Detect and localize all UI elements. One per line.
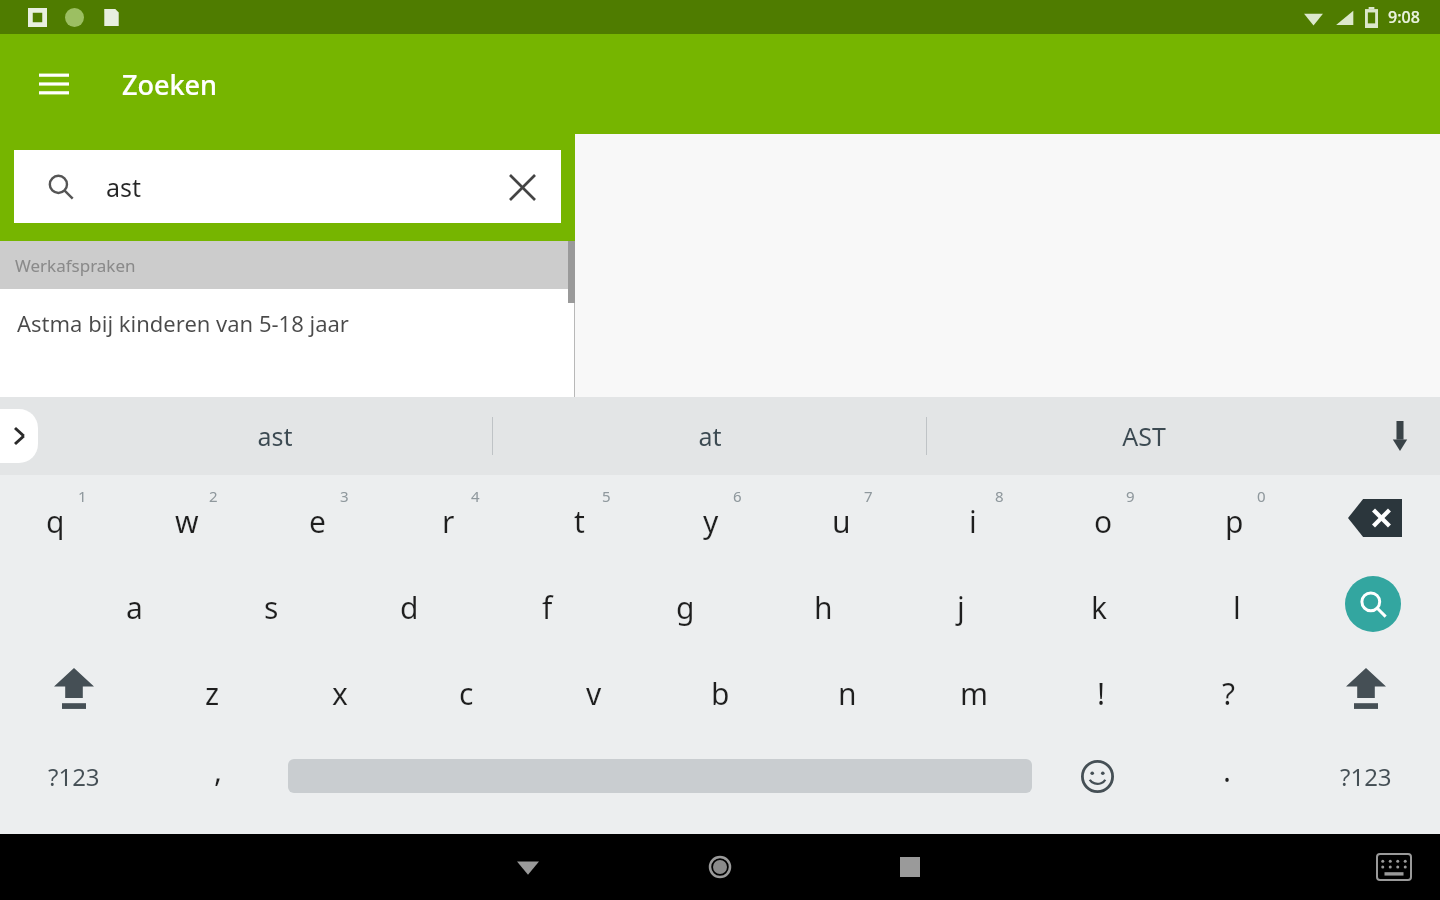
staticText: 6 [733,486,742,506]
staticText: 0 [1257,486,1266,506]
button[interactable]: a [66,561,203,647]
staticText: w [175,501,199,542]
button[interactable]: Voice input [1360,397,1440,475]
button[interactable]: p [1179,475,1310,561]
staticText: 1 [78,486,87,506]
button[interactable]: Home [690,837,750,897]
button[interactable]: Hide keyboard [498,837,558,897]
button[interactable]: h [754,561,892,647]
button[interactable]: ?123 [1292,733,1440,819]
staticText: r [442,501,455,542]
button[interactable]: o [1048,475,1179,561]
staticText: s [264,587,279,628]
staticText: f [542,587,553,628]
staticText: v [586,673,602,714]
button[interactable]: u [786,475,917,561]
button[interactable]: c [403,647,530,733]
staticText: Astma bij kinderen van 5-18 jaar [17,308,349,338]
button[interactable]: ? [1165,647,1292,733]
button[interactable]: v [530,647,657,733]
button[interactable]: i [917,475,1048,561]
staticText: y [703,501,719,542]
button[interactable]: ?123 [0,733,148,819]
button[interactable]: f [478,561,616,647]
staticText: a [126,587,143,628]
staticText: b [711,673,730,714]
staticText: . [1223,750,1232,791]
button[interactable]: More suggestions [0,409,38,463]
staticText: d [400,587,419,628]
button[interactable]: Emoji [1032,733,1162,819]
staticText: AST [1122,419,1166,453]
staticText: 9:08 [1388,6,1420,28]
staticText: 5 [602,486,611,506]
button[interactable]: t [524,475,655,561]
button[interactable]: b [657,647,784,733]
staticText: i [969,501,977,542]
staticText: , [214,750,223,791]
staticText: j [957,587,965,628]
button[interactable]: Change keyboard [1366,839,1422,895]
button[interactable]: ast [14,150,561,223]
button[interactable]: Shift [0,647,148,733]
button[interactable]: ast [58,397,492,475]
staticText: 3 [340,486,349,506]
staticText: x [332,673,348,714]
button[interactable]: w [131,475,262,561]
button[interactable]: Search [1306,561,1440,647]
button[interactable]: Open navigation menu [26,56,82,112]
button[interactable]: , [148,733,288,819]
staticText: 9 [1126,486,1135,506]
button[interactable]: Space [288,733,1032,819]
button[interactable]: Backspace [1310,475,1440,561]
button[interactable]: d [340,561,478,647]
button[interactable]: Recent apps [880,837,940,897]
staticText: z [205,673,220,714]
button[interactable]: . [1162,733,1292,819]
button[interactable]: k [1030,561,1168,647]
button[interactable]: z [148,647,276,733]
staticText: ?123 [1340,760,1392,793]
staticText: q [46,501,65,542]
staticText: n [838,673,857,714]
staticText: t [574,501,585,542]
staticText: m [960,673,989,714]
staticText: c [459,673,474,714]
staticText: h [814,587,833,628]
button[interactable]: g [616,561,754,647]
staticText: Zoeken [122,66,218,103]
button[interactable]: Shift [1292,647,1440,733]
staticText: ast [257,419,293,453]
button[interactable]: y [655,475,786,561]
button[interactable]: j [892,561,1030,647]
button[interactable]: q [0,475,131,561]
staticText: o [1094,501,1113,542]
button[interactable]: e [262,475,393,561]
button[interactable]: l [1168,561,1306,647]
staticText: 7 [864,486,873,506]
staticText: k [1091,587,1108,628]
staticText: 2 [209,486,218,506]
staticText: 4 [471,486,480,506]
staticText: 8 [995,486,1004,506]
button[interactable]: Astma bij kinderen van 5-18 jaar [0,289,575,357]
button[interactable]: m [911,647,1038,733]
button[interactable]: r [393,475,524,561]
button[interactable]: AST [927,397,1360,475]
button[interactable]: at [493,397,926,475]
staticText: g [676,587,695,628]
staticText: at [698,419,722,453]
button[interactable]: Clear search [493,158,551,216]
button[interactable]: x [276,647,403,733]
staticText: e [309,501,326,542]
staticText: p [1225,501,1244,542]
staticText: ? [1222,673,1236,714]
staticText: Werkafspraken [15,254,136,277]
staticText: ?123 [48,760,100,793]
button[interactable]: ! [1038,647,1165,733]
staticText: ast [106,170,493,204]
staticText: u [832,501,851,542]
staticText: l [1233,587,1241,628]
button[interactable]: s [203,561,340,647]
button[interactable]: n [784,647,911,733]
